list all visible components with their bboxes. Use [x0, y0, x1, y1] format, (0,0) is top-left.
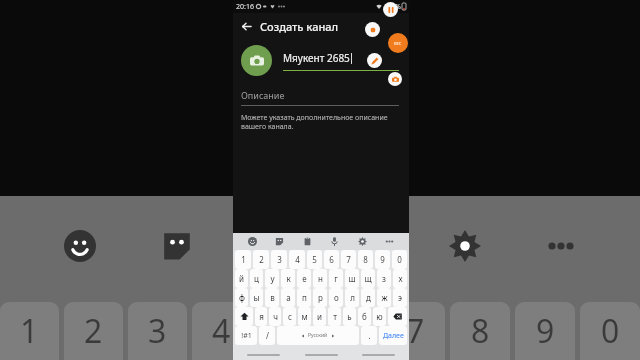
button[interactable]: т — [328, 307, 341, 326]
staticText: б — [362, 311, 367, 322]
button[interactable]: й — [235, 269, 248, 288]
staticText: в — [270, 292, 275, 303]
button[interactable]: 0 — [392, 250, 407, 269]
button[interactable]: в — [265, 288, 279, 307]
button[interactable]: 8 — [358, 250, 373, 269]
button[interactable]: !#1 — [235, 326, 257, 345]
button[interactable]: Рисовать — [367, 53, 382, 68]
staticText: 6 — [341, 309, 360, 353]
button[interactable]: 2 — [253, 250, 269, 269]
button[interactable]: а — [281, 288, 295, 307]
staticText: 4 — [212, 309, 231, 353]
staticText: 7 — [406, 309, 425, 353]
button[interactable]: ш — [345, 269, 359, 288]
button[interactable]: р — [313, 288, 327, 307]
staticText: 1 — [241, 254, 246, 265]
staticText: 5 — [276, 309, 295, 353]
button[interactable]: Далее — [379, 326, 407, 345]
staticText: !#1 — [241, 331, 252, 341]
staticText: к — [286, 273, 291, 284]
button[interactable]: Регистр — [235, 307, 253, 326]
button[interactable]: б — [358, 307, 371, 326]
button[interactable]: Назад — [233, 13, 260, 40]
button[interactable]: н — [313, 269, 327, 288]
button[interactable]: 5 — [307, 250, 322, 269]
staticText: ш — [348, 273, 356, 284]
button[interactable]: 1 — [235, 250, 251, 269]
button[interactable]: Настройки — [354, 233, 371, 250]
button[interactable]: е — [297, 269, 311, 288]
staticText: . — [368, 330, 371, 341]
button[interactable]: ь — [343, 307, 356, 326]
staticText: 8 — [363, 254, 368, 265]
button[interactable]: ц — [250, 269, 263, 288]
button[interactable]: я — [255, 307, 267, 326]
staticText: о — [334, 292, 339, 303]
button[interactable]: и — [313, 307, 326, 326]
staticText: 3 — [277, 254, 282, 265]
staticText: 5% — [391, 2, 401, 12]
staticText: Далее — [383, 331, 404, 341]
button[interactable]: 6 — [324, 250, 339, 269]
staticText: 9 — [380, 254, 385, 265]
button[interactable]: 9 — [375, 250, 390, 269]
staticText: п — [302, 292, 307, 303]
button[interactable]: л — [345, 288, 359, 307]
button[interactable]: Голосовой ввод — [326, 233, 343, 250]
button[interactable]: ж — [377, 288, 391, 307]
staticText: 8 — [471, 309, 490, 353]
button[interactable]: Эмодзи — [244, 233, 261, 250]
button[interactable]: о — [329, 288, 343, 307]
button[interactable]: щ — [361, 269, 375, 288]
button[interactable]: Остановить запись — [365, 22, 380, 37]
button[interactable]: Камера — [388, 72, 402, 86]
button[interactable]: з — [377, 269, 391, 288]
staticText: Мяукент 2685 — [283, 51, 350, 65]
button[interactable]: г — [329, 269, 343, 288]
staticText: Можете указать дополнительное описание в… — [241, 113, 388, 131]
button[interactable]: Удалить — [388, 307, 407, 326]
staticText: г — [334, 273, 338, 284]
button[interactable]: Русский — [277, 326, 359, 345]
button[interactable]: ф — [235, 288, 248, 307]
button[interactable]: ю — [373, 307, 386, 326]
button[interactable]: к — [281, 269, 295, 288]
staticText: щ — [364, 273, 372, 284]
button[interactable]: э — [393, 288, 407, 307]
button[interactable]: Мяукент 2685 — [283, 51, 399, 71]
button[interactable]: с — [283, 307, 296, 326]
button[interactable]: . — [361, 326, 377, 345]
staticText: 4 — [295, 254, 300, 265]
staticText: ч — [273, 311, 278, 322]
button[interactable]: м — [298, 307, 311, 326]
button[interactable]: ы — [250, 288, 263, 307]
staticText: 5 — [312, 254, 317, 265]
button[interactable]: / — [259, 326, 275, 345]
staticText: Создать канал — [260, 19, 339, 34]
button[interactable]: Пауза — [383, 2, 398, 17]
button[interactable]: Буфер обмена — [299, 233, 316, 250]
button[interactable]: п — [297, 288, 311, 307]
staticText: 0 — [601, 309, 620, 353]
staticText: й — [239, 273, 244, 284]
staticText: х — [398, 273, 403, 284]
button[interactable]: Ещё — [381, 233, 398, 250]
button[interactable]: д — [361, 288, 375, 307]
button[interactable]: у — [265, 269, 279, 288]
button[interactable]: 7 — [341, 250, 356, 269]
button[interactable]: х — [393, 269, 407, 288]
staticText: ц — [254, 273, 259, 284]
button[interactable]: Стикеры — [271, 233, 288, 250]
staticText: 1 — [20, 309, 39, 353]
button[interactable]: 4 — [289, 250, 305, 269]
staticText: ф — [239, 292, 245, 303]
staticText: з — [382, 273, 386, 284]
staticText: ю — [376, 311, 383, 322]
button[interactable]: Запись — [388, 33, 408, 53]
button[interactable]: Выбрать фото канала — [241, 45, 272, 76]
button[interactable]: 3 — [271, 250, 287, 269]
button[interactable]: ч — [269, 307, 281, 326]
button[interactable]: Описание — [241, 89, 399, 106]
staticText: 0 — [397, 254, 402, 265]
staticText: ы — [253, 292, 260, 303]
